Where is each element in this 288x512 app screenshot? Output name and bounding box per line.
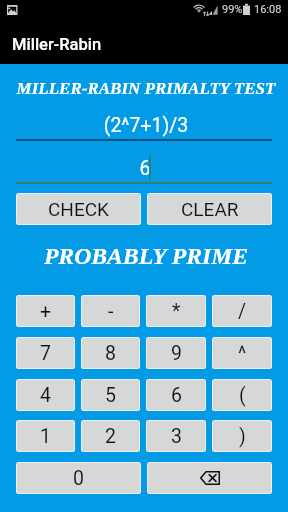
- staticText: 8: [105, 342, 116, 365]
- staticText: (2^7+1)/3: [2, 114, 288, 137]
- button[interactable]: +: [16, 295, 75, 327]
- staticText: MILLER-RABIN PRIMALTY TEST: [2, 79, 288, 98]
- button[interactable]: (: [212, 379, 272, 411]
- button[interactable]: ^: [212, 337, 272, 369]
- staticText: ^: [238, 342, 247, 365]
- button[interactable]: 6: [146, 379, 206, 411]
- staticText: -: [108, 300, 114, 323]
- staticText: +: [40, 300, 52, 323]
- staticText: 5: [105, 384, 116, 407]
- button[interactable]: 7: [16, 337, 75, 369]
- button[interactable]: Backspace: [147, 462, 272, 494]
- staticText: CHECK: [48, 198, 110, 220]
- staticText: 9: [171, 342, 182, 365]
- staticText: 3: [171, 425, 182, 448]
- staticText: 6: [1, 157, 288, 180]
- staticText: 16:08: [254, 3, 282, 16]
- staticText: (: [239, 384, 246, 407]
- staticText: 6: [171, 384, 182, 407]
- staticText: 99%: [222, 3, 243, 16]
- button[interactable]: 3: [146, 420, 206, 452]
- staticText: 4: [40, 384, 51, 407]
- staticText: ): [239, 425, 246, 448]
- button[interactable]: 0: [16, 462, 141, 494]
- staticText: Miller-Rabin: [12, 35, 102, 54]
- staticText: 1: [40, 425, 51, 448]
- staticText: CLEAR: [181, 198, 239, 220]
- staticText: /: [238, 300, 247, 323]
- button[interactable]: 9: [146, 337, 206, 369]
- button[interactable]: 1: [16, 420, 75, 452]
- staticText: 0: [73, 467, 84, 490]
- button[interactable]: ): [212, 420, 272, 452]
- button[interactable]: 2: [81, 420, 140, 452]
- button[interactable]: /: [212, 295, 272, 327]
- staticText: *: [172, 300, 181, 323]
- button[interactable]: 8: [81, 337, 140, 369]
- button[interactable]: CLEAR: [147, 193, 272, 225]
- button[interactable]: CHECK: [16, 193, 141, 225]
- staticText: 2: [105, 425, 116, 448]
- button[interactable]: -: [81, 295, 140, 327]
- staticText: PROBABLY PRIME: [2, 243, 288, 269]
- staticText: 7: [40, 342, 51, 365]
- button[interactable]: 5: [81, 379, 140, 411]
- button[interactable]: *: [146, 295, 206, 327]
- button[interactable]: 4: [16, 379, 75, 411]
